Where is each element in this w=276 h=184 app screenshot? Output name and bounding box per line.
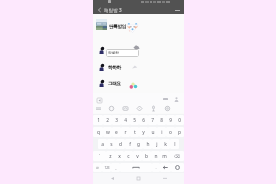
staticText: 7: [151, 117, 154, 124]
staticText: l: [174, 141, 176, 148]
button[interactable]: v: [133, 151, 142, 161]
staticText: 4: [124, 117, 127, 124]
staticText: 6: [142, 117, 145, 124]
button[interactable]: 4: [121, 115, 130, 125]
staticText: p: [178, 129, 181, 136]
staticText: 123: [104, 166, 110, 170]
button[interactable]: Emoji: [171, 163, 184, 172]
button[interactable]: f: [125, 139, 134, 149]
button[interactable]: Back: [95, 6, 103, 14]
button[interactable]: m: [160, 151, 169, 161]
button[interactable]: x: [115, 151, 124, 161]
button[interactable]: 0: [175, 115, 184, 125]
button[interactable]: 3: [112, 115, 121, 125]
button[interactable]: Recents: [159, 173, 170, 184]
staticText: 하하하: [108, 65, 121, 71]
staticText: a: [101, 141, 104, 148]
staticText: b: [145, 153, 148, 160]
button[interactable]: z: [106, 151, 115, 161]
button[interactable]: w: [103, 127, 112, 137]
button[interactable]: j: [152, 139, 161, 149]
button[interactable]: Attach: [162, 97, 169, 101]
button[interactable]: Settings: [163, 104, 172, 113]
button[interactable]: ⌫: [169, 151, 184, 161]
button[interactable]: p: [175, 127, 184, 137]
staticText: z: [109, 153, 112, 160]
button[interactable]: Enter: [160, 163, 171, 172]
button[interactable]: 2: [103, 115, 112, 125]
staticText: t: [134, 129, 136, 136]
button[interactable]: Gallery: [121, 104, 130, 113]
button[interactable]: Expand toolbar: [95, 96, 103, 104]
button[interactable]: s: [107, 139, 116, 149]
button[interactable]: o: [166, 127, 175, 137]
button[interactable]: Shortcuts: [135, 104, 144, 113]
button[interactable]: 1: [93, 115, 103, 125]
button[interactable]: Space: [120, 163, 152, 172]
staticText: m: [162, 153, 167, 160]
staticText: 그래요: [108, 81, 121, 87]
staticText: ⌫: [174, 154, 180, 159]
button[interactable]: b: [142, 151, 151, 161]
button[interactable]: 8: [157, 115, 166, 125]
button[interactable]: u: [148, 127, 157, 137]
button[interactable]: k: [161, 139, 170, 149]
staticText: i: [161, 129, 163, 136]
staticText: ,: [115, 165, 117, 170]
button[interactable]: Voice: [149, 104, 158, 113]
button[interactable]: 6: [139, 115, 148, 125]
staticText: ': [99, 153, 100, 159]
staticText: s: [110, 141, 113, 148]
staticText: c: [127, 153, 130, 160]
staticText: 안녕하: [108, 51, 119, 56]
staticText: g: [137, 141, 140, 148]
button[interactable]: Send: [173, 96, 180, 103]
button[interactable]: y: [139, 127, 148, 137]
button[interactable]: r: [121, 127, 130, 137]
button[interactable]: n: [151, 151, 160, 161]
button[interactable]: Back: [107, 173, 118, 184]
button[interactable]: Home: [133, 173, 144, 184]
staticText: q: [97, 129, 100, 136]
button[interactable]: 9: [166, 115, 175, 125]
button[interactable]: ,: [111, 163, 120, 172]
button[interactable]: q: [93, 127, 103, 137]
staticText: h: [146, 141, 150, 148]
button[interactable]: i: [157, 127, 166, 137]
staticText: v: [136, 153, 139, 160]
button[interactable]: 5: [130, 115, 139, 125]
button[interactable]: a: [98, 139, 107, 149]
button[interactable]: 단톡방임: [93, 14, 184, 34]
button[interactable]: h: [143, 139, 152, 149]
staticText: 9: [169, 117, 172, 124]
staticText: 2: [106, 117, 109, 124]
staticText: y: [142, 129, 145, 136]
button[interactable]: ': [93, 151, 106, 161]
staticText: k: [164, 141, 167, 148]
button[interactable]: t: [130, 127, 139, 137]
button[interactable]: g: [134, 139, 143, 149]
button[interactable]: Keyboard: [94, 104, 103, 113]
button[interactable]: e: [112, 127, 121, 137]
button[interactable]: d: [116, 139, 125, 149]
button[interactable]: c: [124, 151, 133, 161]
staticText: x: [118, 153, 121, 160]
staticText: r: [124, 129, 127, 136]
button[interactable]: 123: [102, 163, 111, 172]
button[interactable]: l: [170, 139, 179, 149]
button[interactable]: 한: [93, 163, 102, 172]
staticText: 5: [133, 117, 136, 124]
staticText: 한: [96, 166, 99, 170]
staticText: w: [106, 129, 110, 136]
staticText: j: [156, 141, 158, 148]
button[interactable]: 안녕하: [106, 49, 139, 57]
staticText: 0: [178, 117, 181, 124]
button[interactable]: More options: [173, 6, 182, 14]
staticText: 단톡방임: [109, 24, 126, 30]
button[interactable]: Emoji: [107, 104, 116, 113]
staticText: .: [155, 165, 157, 170]
button[interactable]: 7: [148, 115, 157, 125]
staticText: o: [169, 129, 172, 136]
staticText: 채팅방 3: [104, 7, 122, 13]
